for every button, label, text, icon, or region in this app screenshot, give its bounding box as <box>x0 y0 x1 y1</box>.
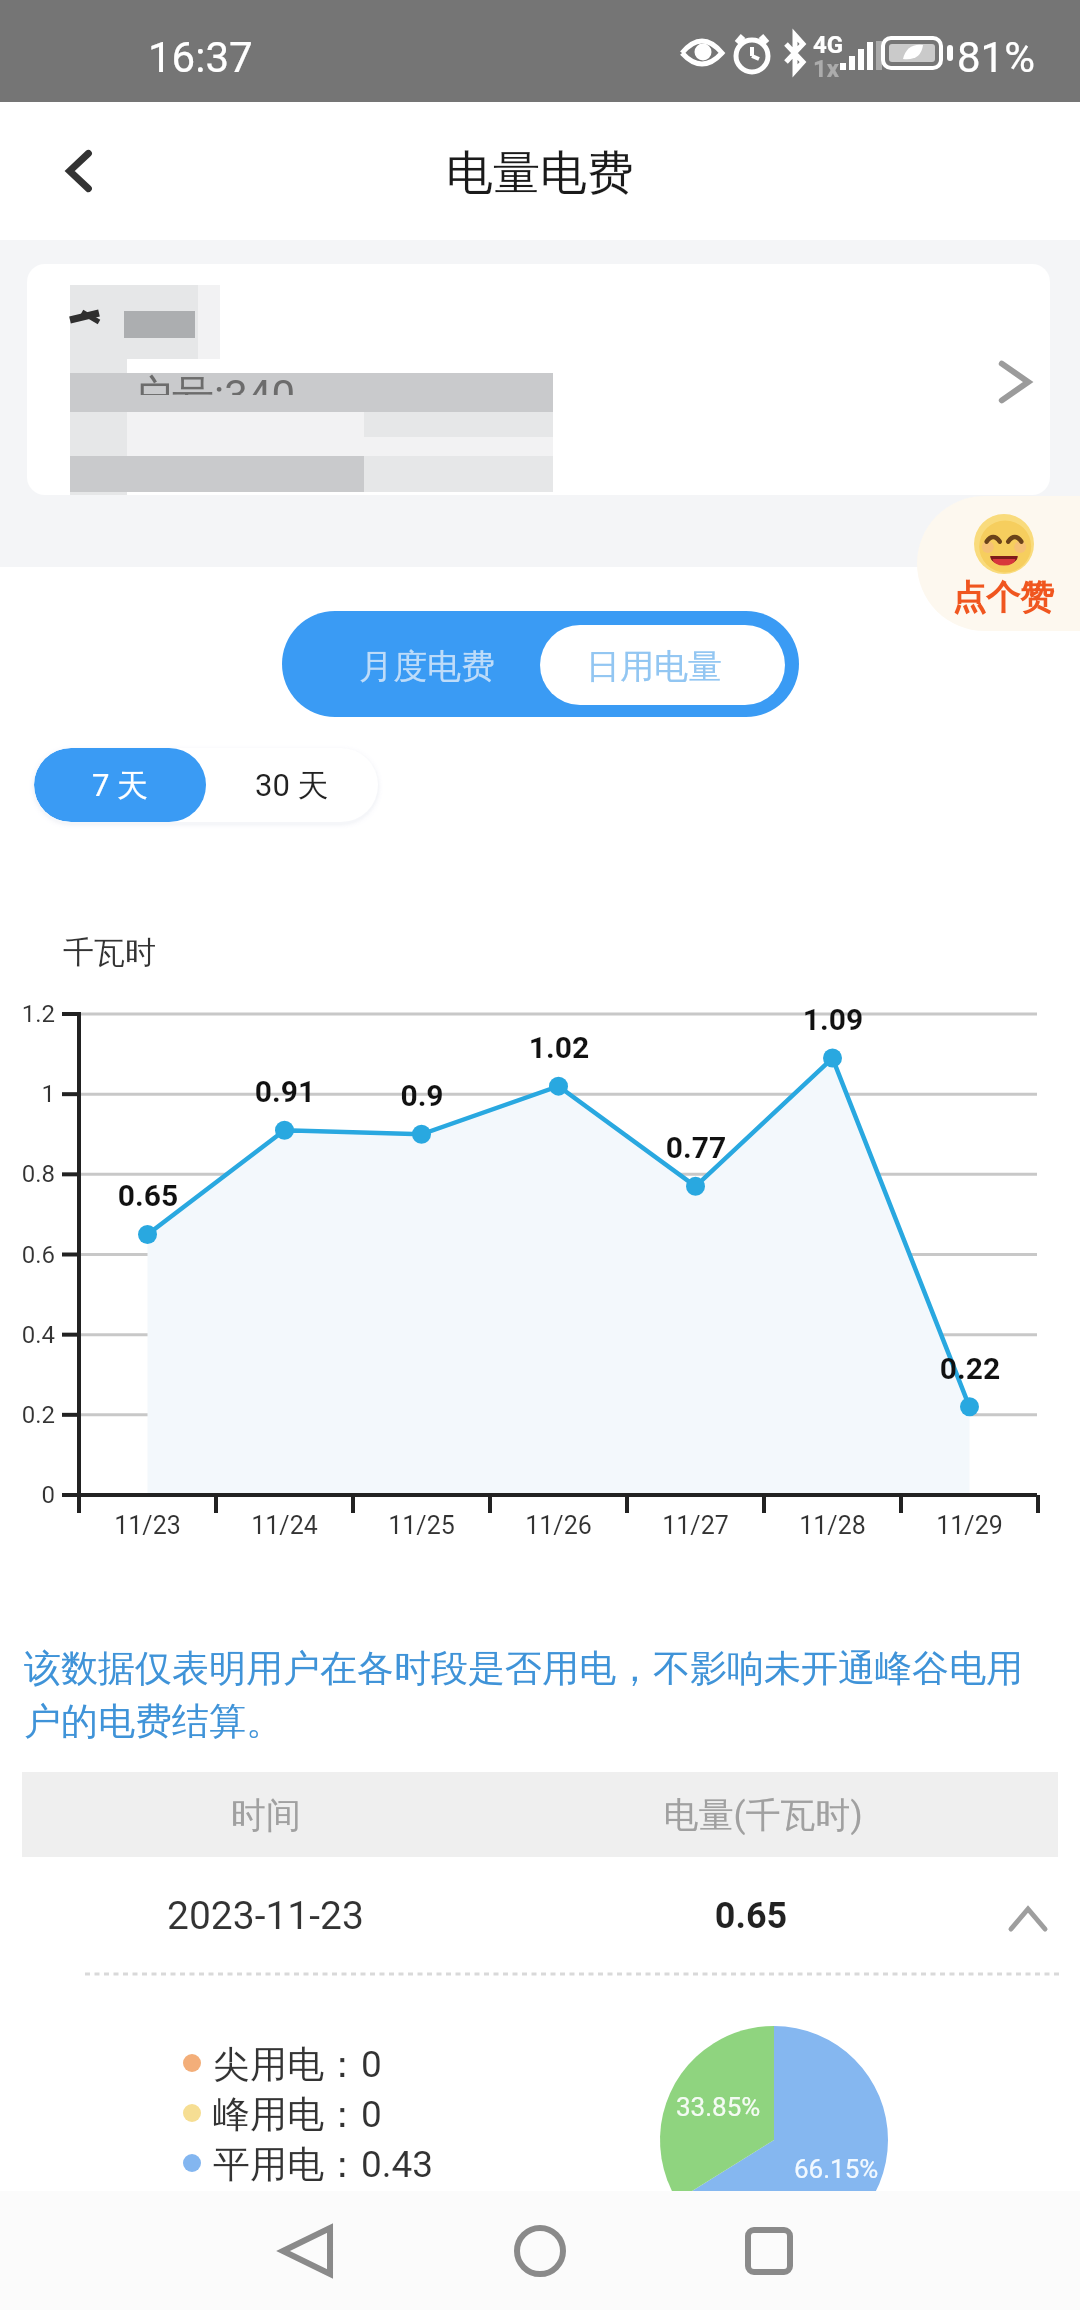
staticText: 0.2 <box>1 1401 55 1429</box>
button[interactable]: Home <box>480 2191 599 2310</box>
staticText: 7 天 <box>92 766 149 805</box>
staticText: 0.8 <box>1 1160 55 1188</box>
staticText: 16:37 <box>148 33 253 82</box>
staticText: 该数据仅表明用户在各时段是否用电，不影响未开通峰谷电用户的电费结算。 <box>24 1645 1044 1745</box>
button[interactable]: Back <box>38 135 110 207</box>
staticText: 1 <box>1 1080 55 1108</box>
staticText: 0.9 <box>342 1078 502 1113</box>
staticText: 0.77 <box>616 1130 776 1165</box>
staticText: 11/26 <box>490 1511 627 1540</box>
button[interactable]: Like <box>917 496 1080 631</box>
staticText: 1x <box>813 55 839 83</box>
staticText: 81% <box>957 33 1035 82</box>
staticText: 0.91 <box>205 1074 365 1109</box>
staticText: 0.65 <box>68 1178 228 1213</box>
staticText: 11/23 <box>79 1511 216 1540</box>
staticText: 千瓦时 <box>63 933 156 972</box>
staticText: 月度电费 <box>359 645 495 688</box>
staticText: 电量电费 <box>446 144 634 203</box>
button[interactable]: 7 天 <box>34 748 206 822</box>
staticText: 33.85% <box>676 2092 761 2122</box>
staticText: 66.15% <box>794 2154 879 2184</box>
staticText: 尖用电：0 <box>213 2041 382 2088</box>
button[interactable]: 户号:340 <box>27 264 1050 495</box>
staticText: 11/24 <box>216 1511 353 1540</box>
staticText: 时间 <box>146 1793 386 1837</box>
staticText: 1.02 <box>479 1030 639 1065</box>
staticText: 日用电量 <box>586 645 722 688</box>
button[interactable]: 日用电量 <box>540 625 785 705</box>
staticText: 点个赞 <box>952 576 1054 619</box>
staticText: 峰用电：0 <box>213 2091 382 2138</box>
staticText: 0.4 <box>1 1321 55 1349</box>
button[interactable]: 30 天 <box>206 748 378 822</box>
staticText: 1.2 <box>1 1000 55 1028</box>
staticText: 0 <box>1 1481 55 1509</box>
staticText: 2023-11-23 <box>167 1893 364 1939</box>
button[interactable]: 月度电费 <box>282 611 540 717</box>
button[interactable]: Recents <box>709 2191 828 2310</box>
staticText: 户号:340 <box>130 370 295 423</box>
staticText: 11/29 <box>901 1511 1038 1540</box>
staticText: 11/27 <box>627 1511 764 1540</box>
staticText: 0.65 <box>671 1895 831 1937</box>
staticText: 平用电：0.43 <box>213 2141 434 2188</box>
staticText: 电量(千瓦时) <box>643 1793 883 1837</box>
button[interactable]: Back <box>247 2191 366 2310</box>
button[interactable]: 2023-11-23 <box>0 1857 1080 1973</box>
staticText: 4G <box>813 31 844 59</box>
staticText: 0.22 <box>890 1351 1050 1386</box>
staticText: 11/25 <box>353 1511 490 1540</box>
staticText: 1.09 <box>753 1002 913 1037</box>
staticText: 11/28 <box>764 1511 901 1540</box>
staticText: 0.6 <box>1 1241 55 1269</box>
staticText: 30 天 <box>255 766 329 805</box>
